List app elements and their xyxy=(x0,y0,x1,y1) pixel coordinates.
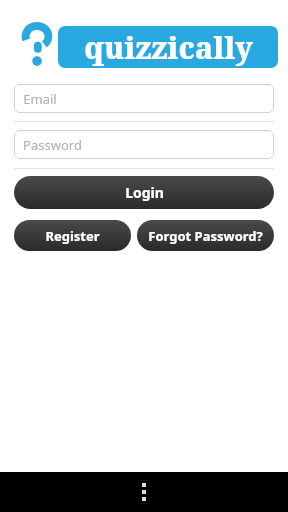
staticText: Email xyxy=(23,90,57,108)
staticText: Register xyxy=(45,227,100,245)
button[interactable]: More options xyxy=(126,474,162,510)
button[interactable]: Login xyxy=(14,176,274,209)
staticText: Forgot Password? xyxy=(148,227,263,245)
button[interactable]: Forgot Password? xyxy=(137,220,274,251)
staticText: Login xyxy=(125,183,164,202)
staticText: Password xyxy=(23,136,82,154)
button[interactable]: Password xyxy=(14,130,274,159)
button[interactable]: Email xyxy=(14,84,274,113)
button[interactable]: Register xyxy=(14,220,131,251)
staticText: quizzically xyxy=(84,27,253,68)
